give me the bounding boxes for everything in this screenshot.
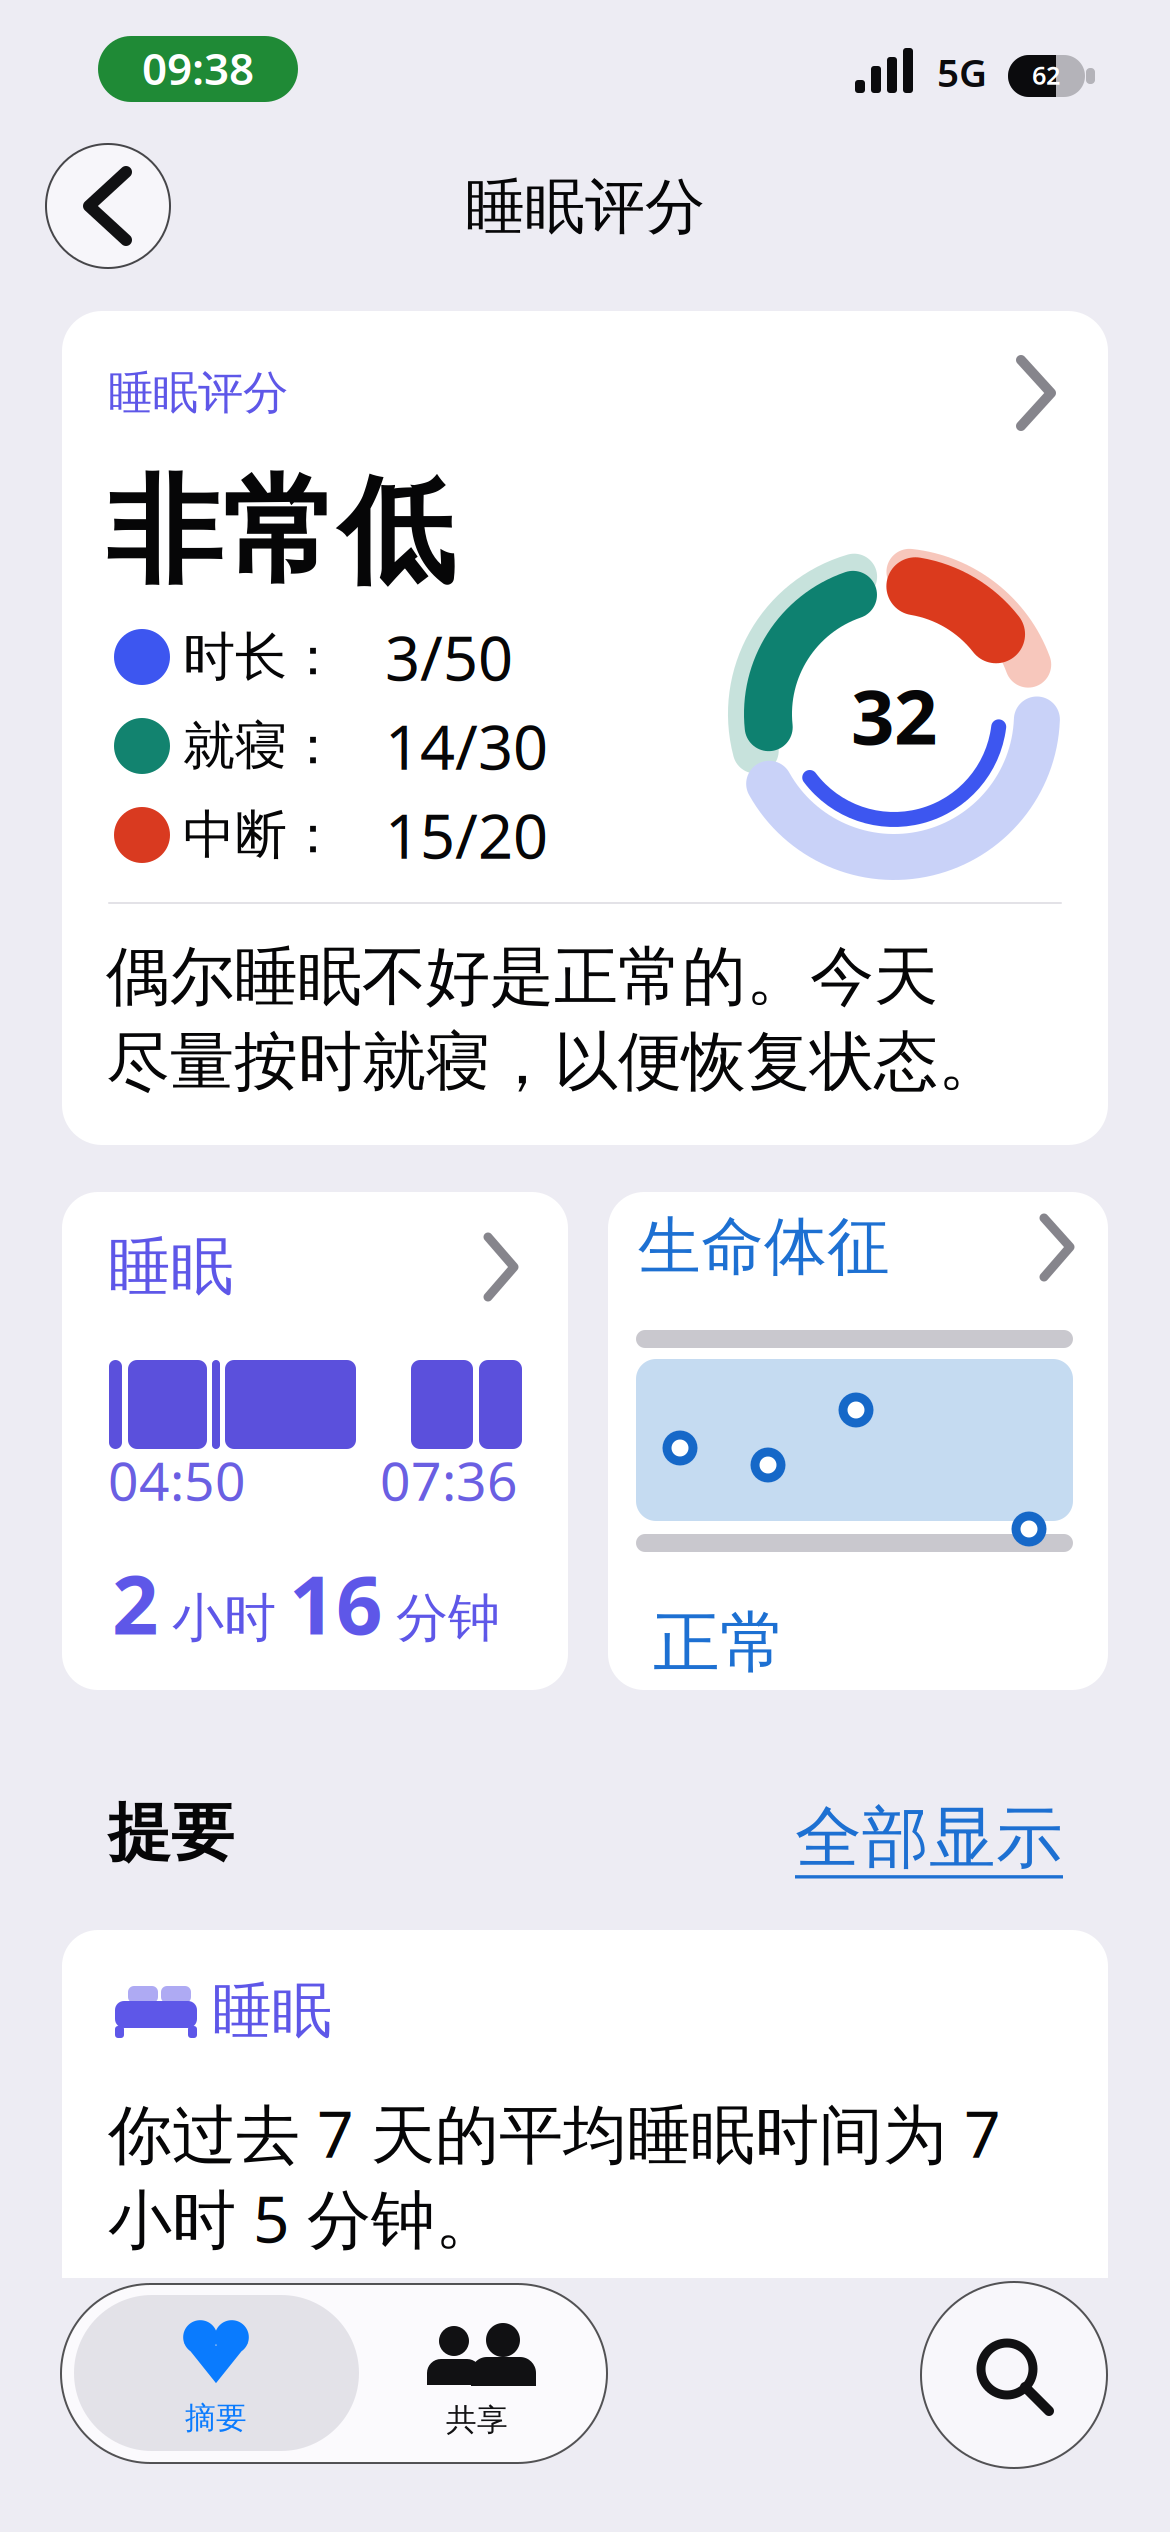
button[interactable]: 共享 [357,2295,597,2451]
button[interactable]: 生命体征 [608,1192,1108,1690]
button[interactable]: 睡眠 [62,1930,1108,2314]
staticText: 3/50 [385,616,513,698]
staticText: 07:36 [380,1445,518,1515]
staticText: 全部显示 [795,1797,1063,1879]
staticText: 2 [112,1549,159,1657]
staticText: 32 [851,664,937,765]
staticText: 62 [1032,58,1060,92]
staticText: 摘要 [185,2399,247,2437]
button[interactable]: Search [921,2282,1107,2468]
staticText: 时长： [183,625,339,689]
staticText: 睡眠评分 [465,170,705,244]
staticText: 15/20 [385,794,548,876]
staticText: 5G [937,46,987,98]
staticText: 正常 [653,1602,787,1684]
staticText: 就寝： [183,714,339,778]
staticText: 你过去 7 天的平均睡眠时间为 7 [108,2090,1001,2175]
staticText: 共享 [446,2401,508,2439]
button[interactable]: 睡眠评分 [62,311,1108,1145]
staticText: 尽量按时就寝，以便恢复状态。 [106,1023,1002,1101]
staticText: 生命体征 [638,1208,890,1285]
staticText: 中断： [183,803,339,867]
button[interactable]: Back [46,144,170,268]
staticText: 偶尔睡眠不好是正常的。今天 [106,938,938,1016]
staticText: 睡眠 [108,1228,234,1305]
staticText: 睡眠评分 [108,365,288,421]
staticText: 14/30 [385,705,548,787]
staticText: 04:50 [108,1445,246,1515]
button[interactable]: 全部显示 [795,1797,1063,1879]
staticText: 小时 [172,1586,276,1650]
staticText: 睡眠 [212,1974,332,2048]
staticText: 小时 5 分钟。 [108,2175,499,2260]
staticText: 分钟 [396,1586,500,1650]
staticText: 非常低 [106,461,454,603]
staticText: 09:38 [142,39,254,97]
staticText: 16 [289,1549,383,1657]
button[interactable]: 摘要 [74,2295,359,2451]
button[interactable]: 睡眠 [62,1192,568,1690]
staticText: 提要 [108,1794,234,1871]
